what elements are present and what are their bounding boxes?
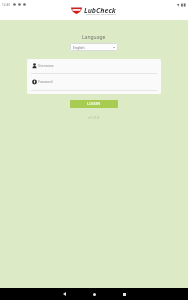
staticText: LubCheck bbox=[84, 6, 116, 16]
staticText: LUBRICATION MANAGEMENT bbox=[86, 13, 117, 16]
button[interactable]: Home bbox=[84, 288, 104, 300]
staticText: English bbox=[73, 45, 85, 50]
button[interactable]: Recent apps bbox=[114, 288, 134, 300]
button[interactable]: Password bbox=[27, 74, 161, 90]
staticText: v1.0.3 bbox=[88, 115, 100, 120]
staticText: 12:45 bbox=[2, 3, 11, 7]
button[interactable]: Username bbox=[27, 59, 161, 73]
button[interactable]: Back bbox=[54, 288, 74, 300]
staticText: Language bbox=[82, 34, 106, 41]
staticText: Username bbox=[38, 64, 54, 68]
staticText: LOGIN bbox=[87, 101, 101, 107]
button[interactable]: English bbox=[70, 43, 118, 51]
button[interactable]: LOGIN bbox=[70, 100, 118, 108]
staticText: Password bbox=[38, 80, 53, 84]
